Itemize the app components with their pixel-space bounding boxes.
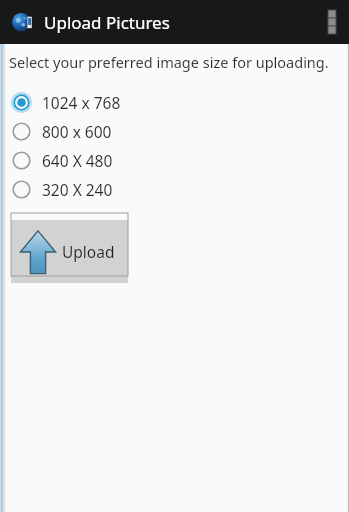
button[interactable]: Upload (11, 220, 128, 283)
staticText: Select your preferred image size for upl… (9, 52, 329, 72)
button[interactable]: More options (315, 0, 349, 44)
staticText: 800 x 600 (42, 121, 112, 142)
button[interactable]: 640 X 480 (0, 146, 349, 175)
button[interactable]: 320 X 240 (0, 175, 349, 204)
staticText: Upload Pictures (44, 11, 170, 34)
staticText: 1024 x 768 (42, 92, 121, 113)
staticText: 320 X 240 (42, 179, 113, 200)
staticText: 640 X 480 (42, 150, 113, 171)
button[interactable]: 800 x 600 (0, 117, 349, 146)
button[interactable]: 1024 x 768 (0, 88, 349, 117)
staticText: Upload (62, 241, 115, 262)
